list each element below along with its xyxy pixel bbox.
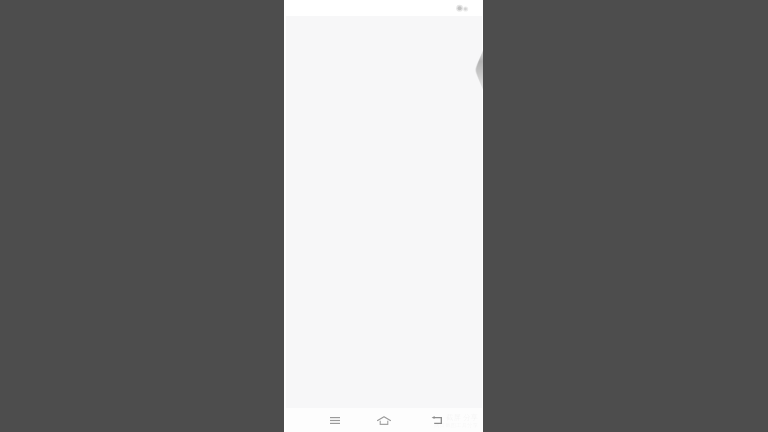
button[interactable]: Back — [427, 412, 446, 428]
staticText: 网页截图工具分享 — [434, 422, 478, 429]
button[interactable]: Recent apps — [325, 412, 344, 428]
button[interactable]: Home — [374, 412, 393, 428]
button[interactable]: Open side panel — [475, 50, 483, 90]
